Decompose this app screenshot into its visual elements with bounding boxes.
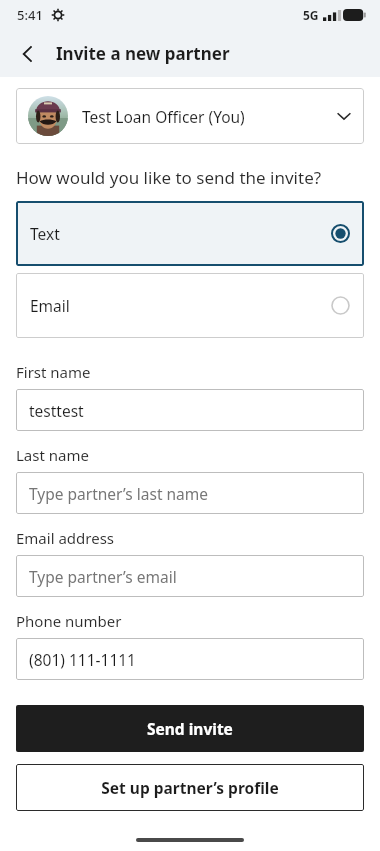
staticText: Type partner’s last name [29, 483, 209, 504]
staticText: Email address [16, 528, 115, 548]
button[interactable]: (801) 111-1111 [16, 638, 364, 680]
staticText: Send invite [147, 718, 233, 739]
staticText: testtest [29, 400, 84, 421]
staticText: (801) 111-1111 [29, 649, 136, 670]
staticText: Set up partner’s profile [101, 777, 279, 798]
button[interactable]: testtest [16, 389, 364, 431]
staticText: 5:41 [17, 6, 43, 24]
button[interactable]: Back [8, 34, 48, 74]
staticText: How would you like to send the invite? [16, 166, 322, 189]
staticText: Type partner’s email [29, 566, 177, 587]
staticText: Text [30, 223, 60, 244]
button[interactable]: Send invite [16, 705, 364, 752]
button[interactable]: Email [16, 273, 364, 338]
staticText: Invite a new partner [56, 42, 230, 65]
staticText: Test Loan Officer (You) [82, 106, 245, 127]
staticText: Phone number [16, 611, 122, 631]
staticText: Email [30, 295, 70, 316]
staticText: Last name [16, 445, 89, 465]
button[interactable]: Test Loan Officer (You) [16, 88, 364, 144]
button[interactable]: Type partner’s last name [16, 472, 364, 514]
staticText: First name [16, 362, 91, 382]
button[interactable]: Type partner’s email [16, 555, 364, 597]
button[interactable]: Text [16, 201, 364, 266]
button[interactable]: Set up partner’s profile [16, 764, 364, 811]
staticText: 5G [303, 7, 319, 23]
